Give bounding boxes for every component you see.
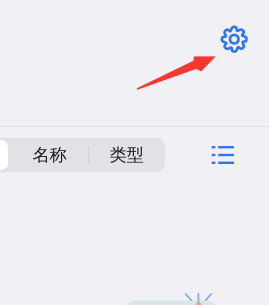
button[interactable]: Settings — [212, 17, 256, 61]
button[interactable]: 类型 — [88, 138, 165, 172]
staticText: 名称 — [32, 144, 66, 166]
staticText: 类型 — [109, 144, 143, 166]
button[interactable]: 名称 — [11, 138, 88, 172]
button[interactable]: List view — [201, 138, 245, 172]
button[interactable]: Siri suggestion — [124, 300, 219, 305]
